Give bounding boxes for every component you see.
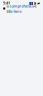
staticText: 9:41 — [3, 0, 10, 6]
button[interactable]: a comprehensive title here — [0, 6, 43, 11]
staticText: a comprehensive title here — [6, 3, 36, 14]
staticText: ▮▮ ◗ ▰ — [29, 1, 40, 5]
